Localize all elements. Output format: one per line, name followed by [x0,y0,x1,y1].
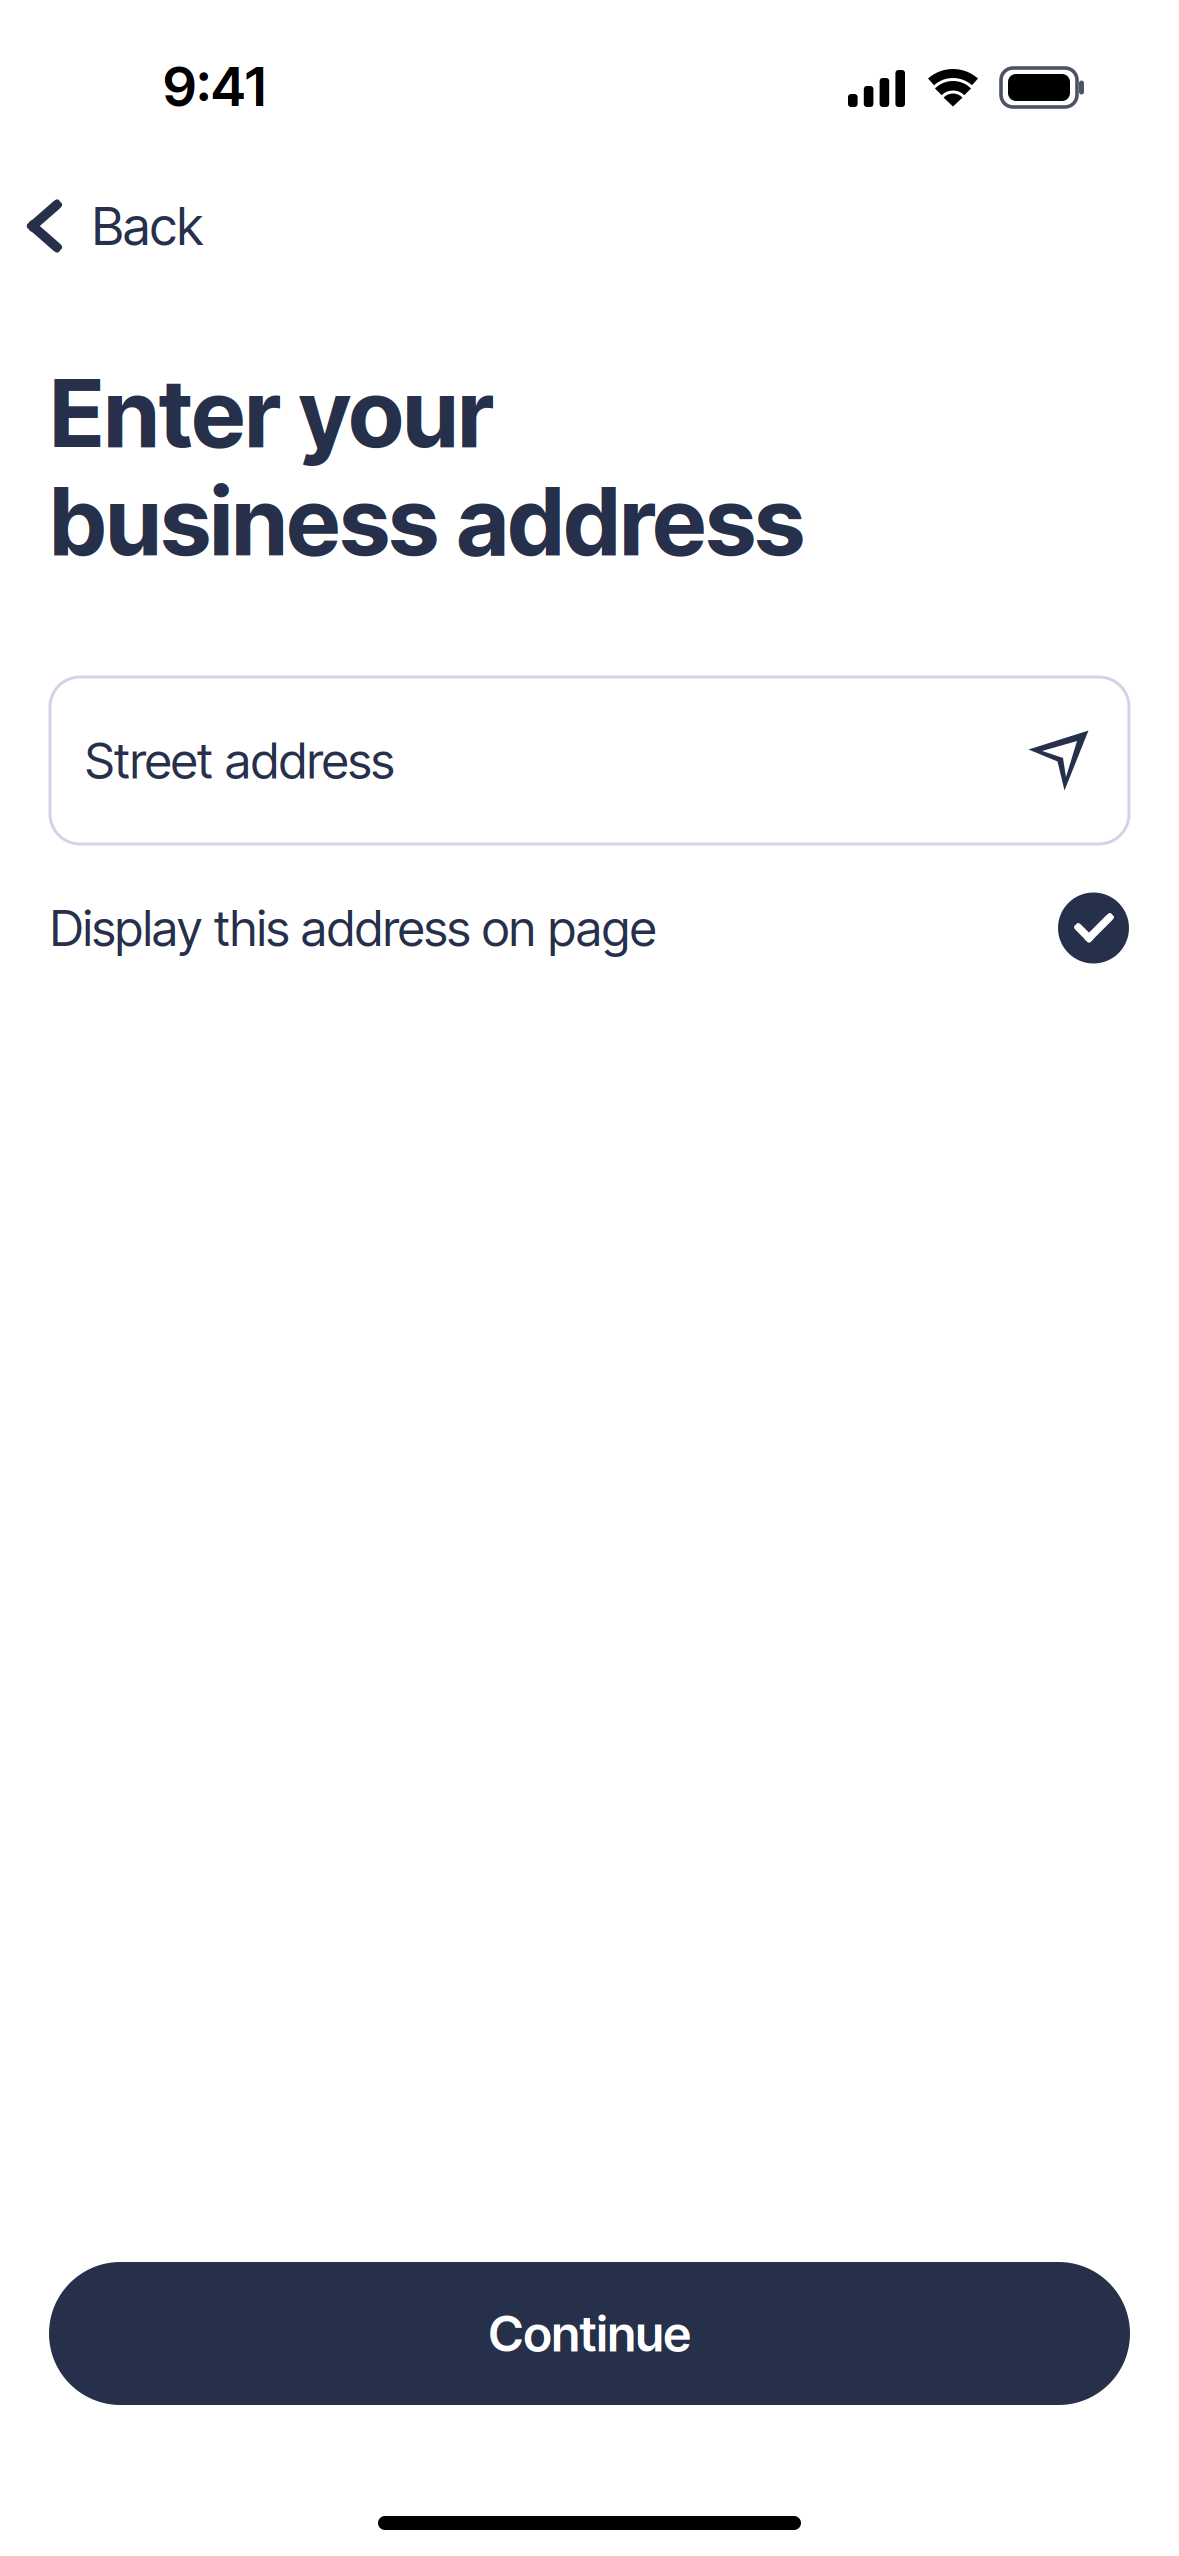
button[interactable]: Display this address on page [0,872,1179,984]
staticText: Street address [85,731,394,790]
staticText: Continue [488,2304,690,2363]
staticText: 9:41 [163,53,266,119]
button[interactable]: Street address [0,677,1179,844]
button[interactable]: Back [0,172,1179,280]
staticText: business address [50,464,804,577]
button[interactable]: Continue [0,2262,1179,2405]
staticText: Display this address on page [50,898,656,958]
staticText: Back [92,194,203,257]
staticText: Enter your [50,356,493,469]
